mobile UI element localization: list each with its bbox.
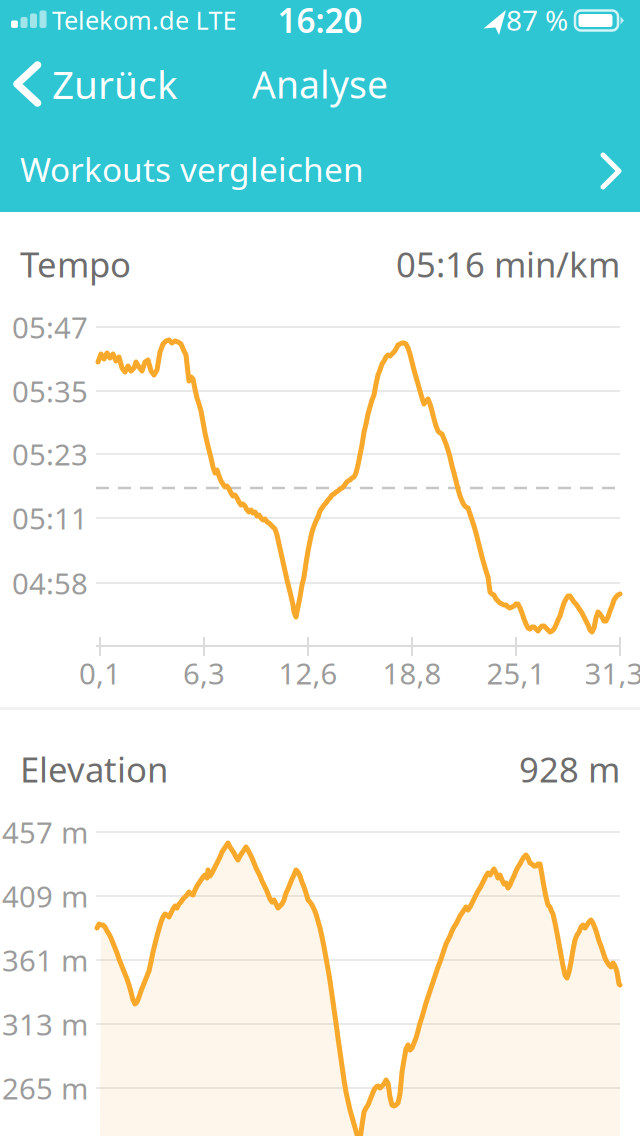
staticText: 457 m <box>2 812 88 851</box>
staticText: 16:20 <box>277 0 362 42</box>
staticText: 928 m <box>519 746 620 792</box>
staticText: Elevation <box>20 746 168 792</box>
staticText: Workouts vergleichen <box>20 147 364 191</box>
staticText: 31,3 <box>584 653 640 692</box>
staticText: 6,3 <box>183 653 225 692</box>
staticText: Zurück <box>52 58 178 110</box>
staticText: 12,6 <box>278 653 337 692</box>
staticText: 05:35 <box>12 371 88 410</box>
staticText: 87 % <box>506 1 568 39</box>
staticText: 05:11 <box>12 498 88 537</box>
staticText: 05:16 min/km <box>396 241 620 287</box>
staticText: 313 m <box>2 1004 88 1043</box>
staticText: 265 m <box>2 1068 88 1107</box>
staticText: 05:23 <box>12 434 88 473</box>
staticText: 25,1 <box>486 653 545 692</box>
staticText: 0,1 <box>79 653 121 692</box>
staticText: LTE <box>195 3 236 37</box>
staticText: 05:47 <box>12 307 88 346</box>
staticText: 361 m <box>2 940 88 979</box>
staticText: Analyse <box>252 59 388 109</box>
staticText: 409 m <box>2 876 88 915</box>
button[interactable]: Workouts vergleichen <box>0 126 640 212</box>
staticText: 18,8 <box>382 653 441 692</box>
staticText: Telekom.de <box>52 3 189 37</box>
staticText: Tempo <box>20 241 131 287</box>
button[interactable]: Zurück <box>0 54 180 114</box>
staticText: 04:58 <box>12 563 88 602</box>
